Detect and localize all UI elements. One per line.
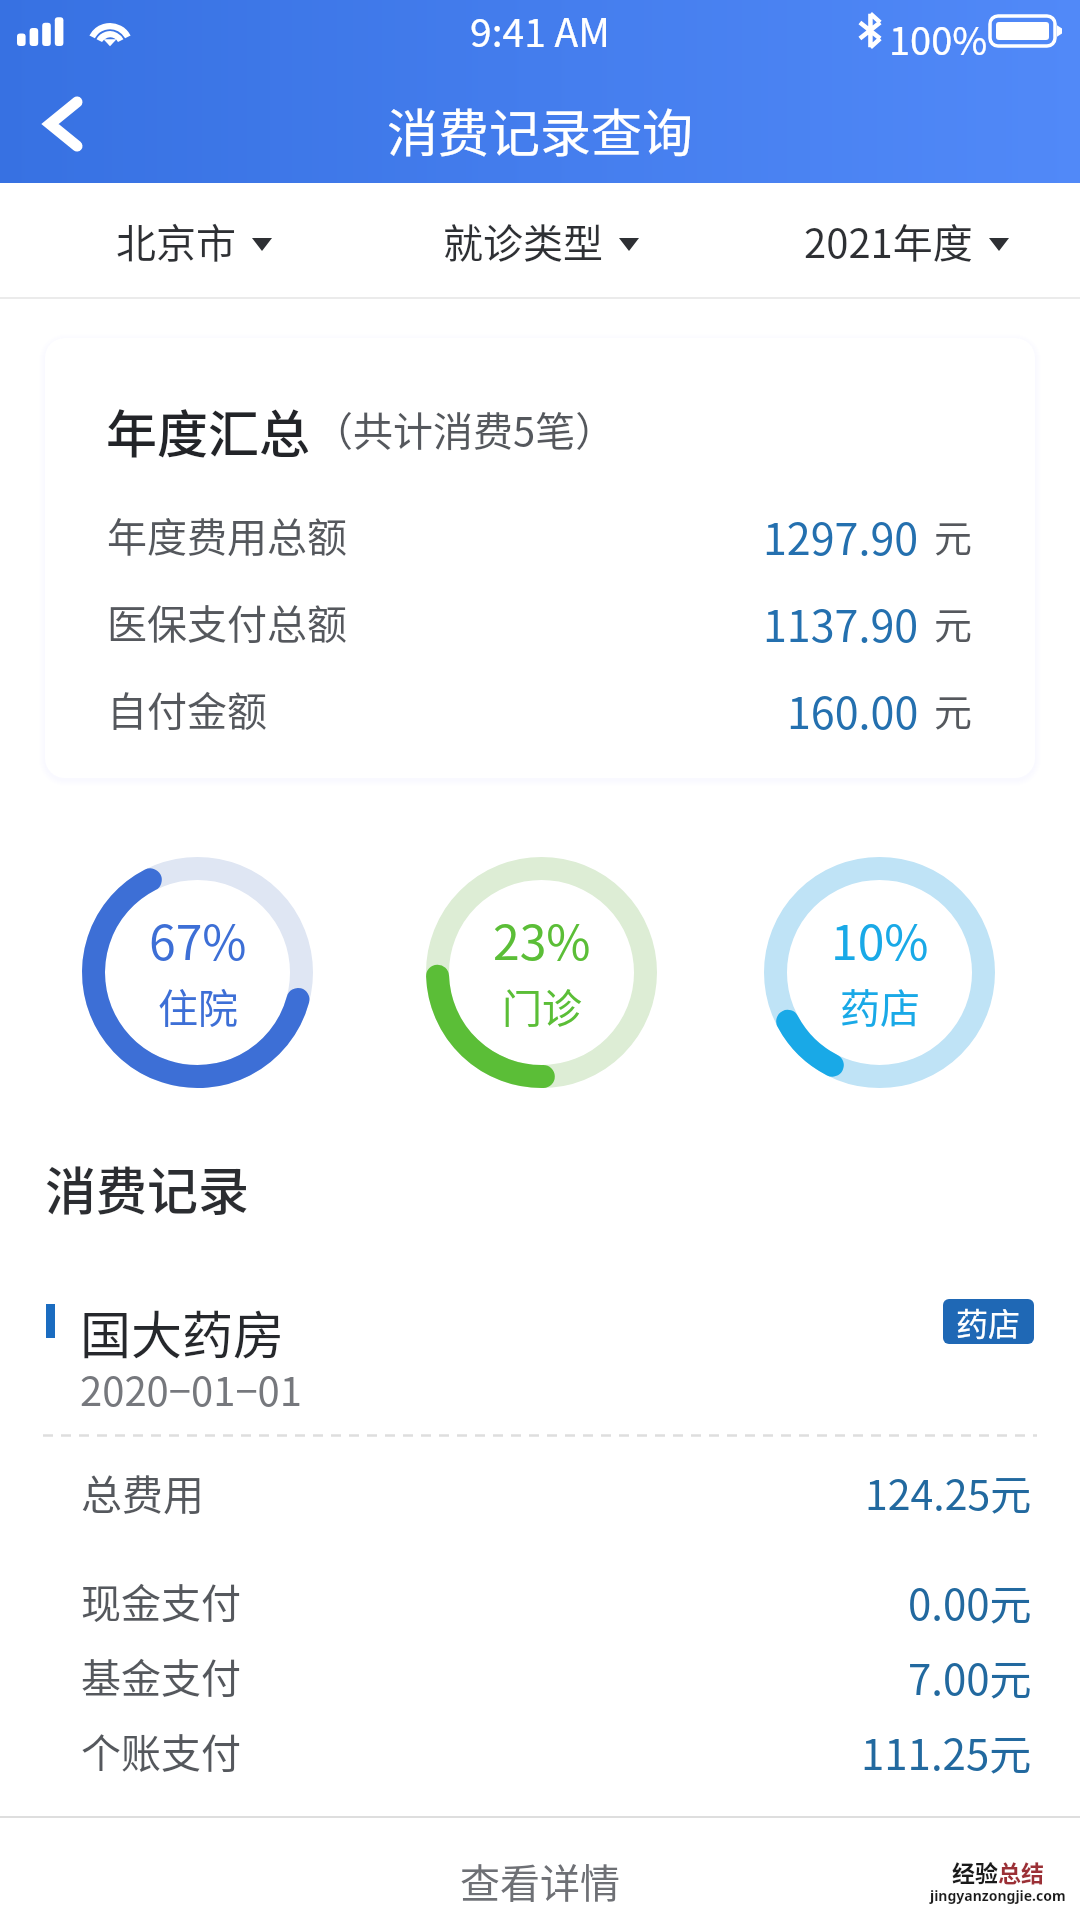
- staticText: 160.00: [787, 679, 919, 739]
- button[interactable]: 药店: [943, 1299, 1034, 1344]
- staticText: 基金支付: [81, 1647, 241, 1705]
- button[interactable]: 查看详情: [0, 1818, 1080, 1921]
- staticText: 元: [934, 508, 973, 563]
- staticText: 自付金额: [107, 680, 267, 738]
- staticText: 9:41 AM: [470, 2, 610, 58]
- button[interactable]: 北京市: [104, 183, 284, 299]
- button[interactable]: 国大药房: [0, 1280, 1080, 1800]
- staticText: 年度费用总额: [107, 506, 347, 564]
- staticText: 124.25元: [865, 1462, 1032, 1521]
- staticText: 1297.90: [763, 505, 919, 565]
- staticText: 10%: [831, 904, 929, 964]
- staticText: 年度汇总: [106, 394, 311, 468]
- staticText: 现金支付: [81, 1572, 241, 1630]
- staticText: 23%: [493, 904, 591, 964]
- staticText: 2020−01−01: [80, 1360, 302, 1418]
- staticText: （共计消费5笔）: [313, 400, 616, 458]
- staticText: 总费用: [81, 1462, 204, 1521]
- staticText: 就诊类型: [443, 212, 603, 270]
- staticText: 消费记录查询: [387, 93, 694, 167]
- staticText: 111.25元: [861, 1721, 1032, 1781]
- staticText: 元: [934, 682, 973, 737]
- button[interactable]: Back: [12, 74, 114, 174]
- button[interactable]: 67%: [82, 857, 313, 1088]
- staticText: 国大药房: [80, 1295, 285, 1369]
- button[interactable]: 2021年度: [756, 183, 1056, 299]
- staticText: 经验: [952, 1855, 998, 1888]
- staticText: 总结: [998, 1855, 1044, 1888]
- staticText: 67%: [149, 904, 247, 964]
- staticText: 医保支付总额: [107, 593, 347, 651]
- staticText: jingyanzongjie.com: [930, 1886, 1066, 1905]
- staticText: 7.00元: [908, 1646, 1032, 1706]
- button[interactable]: 23%: [426, 857, 657, 1088]
- button[interactable]: 10%: [764, 857, 995, 1088]
- staticText: 1137.90: [763, 592, 919, 652]
- staticText: 药店: [840, 977, 920, 1035]
- staticText: 门诊: [502, 977, 582, 1035]
- staticText: 元: [934, 595, 973, 650]
- staticText: 100%: [889, 11, 988, 66]
- staticText: 北京市: [116, 212, 236, 270]
- staticText: 0.00元: [908, 1571, 1032, 1631]
- staticText: 消费记录: [45, 1151, 250, 1225]
- staticText: 个账支付: [81, 1722, 241, 1780]
- staticText: 住院: [158, 977, 238, 1035]
- button[interactable]: 就诊类型: [431, 183, 651, 299]
- staticText: 药店: [956, 1299, 1021, 1344]
- staticText: 查看详情: [460, 1852, 620, 1910]
- staticText: 2021年度: [804, 212, 973, 270]
